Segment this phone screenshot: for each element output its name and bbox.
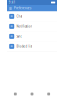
staticText: Sync: [16, 35, 21, 38]
button[interactable]: Chat: [7, 11, 57, 21]
button[interactable]: Home: [7, 88, 24, 100]
staticText: Chat: [16, 15, 22, 18]
button[interactable]: Blocked list: [7, 41, 57, 51]
button[interactable]: Profile: [40, 88, 57, 100]
staticText: Notification: [16, 25, 32, 28]
button[interactable]: Sync: [7, 31, 57, 41]
staticText: 9:41: [9, 1, 16, 4]
staticText: Preferences: [14, 6, 31, 10]
button[interactable]: Search: [24, 88, 40, 100]
staticText: Blocked list: [16, 45, 32, 48]
button[interactable]: Menu: [8, 5, 13, 11]
button[interactable]: Notification: [7, 21, 57, 31]
